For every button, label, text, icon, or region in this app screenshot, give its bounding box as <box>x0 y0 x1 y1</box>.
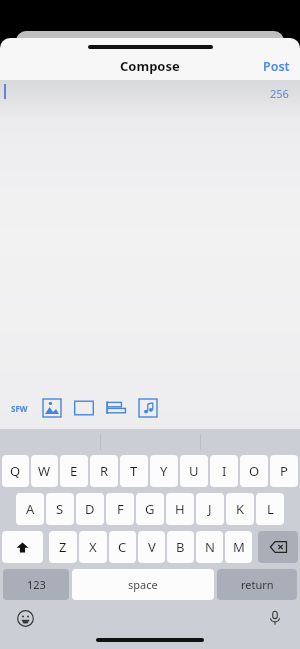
button[interactable]: Post <box>253 54 300 79</box>
staticText: Compose <box>120 57 180 75</box>
staticText: S <box>56 500 64 518</box>
staticText: K <box>236 500 245 518</box>
staticText: G <box>145 500 155 518</box>
staticText: F <box>117 500 124 518</box>
staticText: W <box>38 462 51 480</box>
button[interactable]: K <box>226 493 254 525</box>
staticText: Y <box>160 462 168 480</box>
button[interactable]: I <box>210 455 238 487</box>
staticText: C <box>118 538 127 556</box>
staticText: 256 <box>270 86 289 101</box>
staticText: U <box>189 462 199 480</box>
button[interactable]: E <box>60 455 88 487</box>
button[interactable]: M <box>225 531 252 563</box>
staticText: T <box>130 462 138 480</box>
button[interactable]: F <box>106 493 134 525</box>
staticText: N <box>205 538 215 556</box>
staticText: V <box>148 538 156 556</box>
button[interactable]: 123 <box>3 569 69 600</box>
staticText: J <box>208 500 212 518</box>
button[interactable]: G <box>136 493 164 525</box>
button[interactable]: return <box>217 569 297 600</box>
button[interactable]: H <box>166 493 194 525</box>
staticText: R <box>100 462 109 480</box>
button[interactable]: S <box>46 493 74 525</box>
staticText: E <box>70 462 78 480</box>
staticText: space <box>128 577 158 592</box>
button[interactable]: V <box>138 531 165 563</box>
button[interactable]: U <box>180 455 208 487</box>
button[interactable]: P <box>270 455 298 487</box>
staticText: O <box>249 462 260 480</box>
button[interactable]: N <box>196 531 223 563</box>
button[interactable]: D <box>76 493 104 525</box>
staticText: H <box>175 500 185 518</box>
button[interactable]: Backspace <box>258 531 298 563</box>
button[interactable]: T <box>120 455 148 487</box>
button[interactable]: O <box>240 455 268 487</box>
button[interactable]: A <box>16 493 44 525</box>
button[interactable]: Shift <box>2 531 43 563</box>
button[interactable]: space <box>72 569 214 600</box>
button[interactable]: Z <box>49 531 77 563</box>
staticText: Post <box>263 58 290 75</box>
staticText: Z <box>59 538 67 556</box>
staticText: A <box>26 500 35 518</box>
staticText: D <box>85 500 95 518</box>
button[interactable]: Dictation <box>264 607 286 629</box>
staticText: X <box>89 538 97 556</box>
staticText: M <box>233 538 245 556</box>
button[interactable]: Q <box>2 455 29 487</box>
button[interactable]: SFW <box>8 399 31 418</box>
button[interactable]: C <box>109 531 136 563</box>
button[interactable]: W <box>31 455 58 487</box>
button[interactable]: R <box>90 455 118 487</box>
staticText: L <box>267 500 274 518</box>
button[interactable]: X <box>79 531 107 563</box>
button[interactable]: Add photo <box>41 397 63 419</box>
button[interactable]: B <box>167 531 194 563</box>
staticText: 123 <box>27 577 46 592</box>
button[interactable]: L <box>256 493 284 525</box>
staticText: SFW <box>11 403 28 414</box>
staticText: return <box>241 577 274 592</box>
button[interactable]: Emoji <box>14 607 36 629</box>
button[interactable]: Y <box>150 455 178 487</box>
staticText: I <box>222 462 227 480</box>
button[interactable]: Add poll <box>105 397 127 419</box>
button[interactable]: Add GIF <box>73 397 95 419</box>
staticText: P <box>280 462 288 480</box>
button[interactable]: Add audio <box>137 397 159 419</box>
staticText: Q <box>10 462 21 480</box>
button[interactable]: J <box>196 493 224 525</box>
staticText: B <box>176 538 185 556</box>
